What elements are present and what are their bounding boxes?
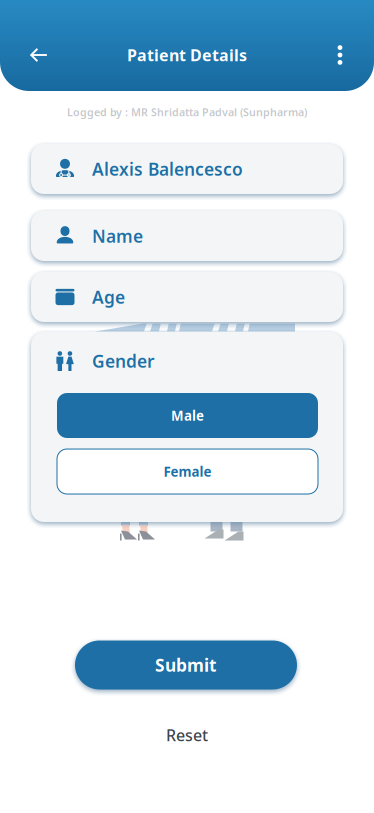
button[interactable]: Female [57,449,318,494]
button[interactable]: Reset [144,714,230,756]
button[interactable]: Submit [75,640,297,689]
staticText: Male [171,407,204,424]
staticText: Gender [92,349,155,372]
staticText: Logged by : MR Shridatta Padval (Sunphar… [67,105,307,119]
staticText: Alexis Balencesco [92,157,243,180]
button[interactable]: Back [17,33,61,77]
staticText: Submit [155,653,217,676]
button[interactable]: Alexis Balencesco [31,144,343,194]
button[interactable]: More options [320,33,360,77]
staticText: Age [92,285,125,308]
button[interactable]: Age [31,272,343,322]
staticText: Female [163,463,211,480]
staticText: Reset [166,724,208,746]
button[interactable]: Male [57,393,318,438]
staticText: Patient Details [127,44,247,66]
staticText: Name [92,224,143,247]
button[interactable]: Name [31,211,343,261]
